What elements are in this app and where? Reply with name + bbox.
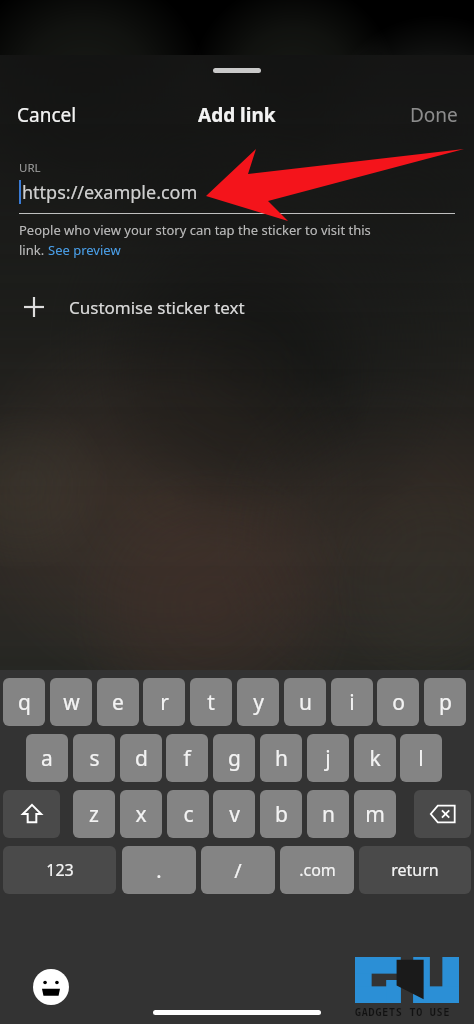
staticText: u	[299, 688, 312, 717]
button[interactable]: Shift	[3, 790, 60, 838]
staticText: p	[439, 688, 452, 717]
staticText: g	[228, 744, 241, 773]
button[interactable]: t	[190, 678, 232, 726]
button[interactable]: .com	[280, 846, 354, 894]
button[interactable]: s	[73, 734, 115, 782]
button[interactable]: k	[354, 734, 396, 782]
button[interactable]: f	[166, 734, 208, 782]
staticText: m	[365, 800, 385, 829]
button[interactable]: Done	[394, 92, 474, 138]
staticText: .	[156, 857, 162, 884]
staticText: .com	[299, 859, 336, 881]
button[interactable]: u	[284, 678, 326, 726]
button[interactable]: .	[122, 846, 196, 894]
button[interactable]: r	[143, 678, 185, 726]
button[interactable]: Cancel	[0, 92, 94, 138]
button[interactable]: return	[359, 846, 471, 894]
staticText: s	[89, 744, 100, 773]
button[interactable]: y	[237, 678, 279, 726]
button[interactable]: o	[377, 678, 419, 726]
staticText: x	[135, 800, 147, 829]
button[interactable]: g	[213, 734, 255, 782]
button[interactable]: d	[120, 734, 162, 782]
staticText: d	[135, 744, 148, 773]
button[interactable]: Emoji keyboard	[33, 969, 69, 1005]
staticText: n	[322, 800, 335, 829]
button[interactable]: w	[50, 678, 92, 726]
button[interactable]: b	[260, 790, 302, 838]
button[interactable]: z	[73, 790, 115, 838]
button[interactable]: e	[97, 678, 139, 726]
button[interactable]: x	[120, 790, 162, 838]
staticText: j	[325, 744, 331, 773]
button[interactable]: h	[260, 734, 302, 782]
staticText: b	[275, 800, 288, 829]
staticText: https://example.com	[22, 180, 198, 205]
button[interactable]: https://example.com	[0, 177, 474, 217]
staticText: Cancel	[17, 102, 77, 128]
staticText: 123	[46, 859, 74, 881]
button[interactable]: Customise sticker text	[0, 283, 474, 331]
button[interactable]: /	[201, 846, 275, 894]
staticText: e	[112, 688, 124, 717]
staticText: URL	[19, 160, 41, 176]
button[interactable]: i	[331, 678, 373, 726]
button[interactable]: m	[354, 790, 396, 838]
staticText: return	[391, 859, 439, 881]
staticText: Done	[410, 102, 458, 128]
button[interactable]: l	[400, 734, 442, 782]
staticText: /	[234, 857, 242, 884]
staticText: k	[369, 744, 381, 773]
button[interactable]: j	[307, 734, 349, 782]
staticText: q	[18, 688, 31, 717]
staticText: i	[349, 688, 355, 717]
staticText: w	[63, 688, 80, 717]
button[interactable]: a	[26, 734, 68, 782]
staticText: Customise sticker text	[69, 296, 245, 319]
staticText: Add link	[198, 102, 276, 128]
staticText: o	[392, 688, 405, 717]
staticText: v	[229, 800, 240, 829]
staticText: GADGETS TO USE	[355, 1005, 451, 1019]
button[interactable]: See preview	[48, 241, 121, 259]
staticText: f	[183, 744, 191, 773]
staticText: h	[275, 744, 288, 773]
button[interactable]: v	[213, 790, 255, 838]
staticText: z	[89, 800, 99, 829]
button[interactable]: n	[307, 790, 349, 838]
staticText: l	[418, 744, 424, 773]
button[interactable]: c	[167, 790, 209, 838]
staticText: y	[253, 688, 264, 717]
staticText: People who view your story can tap the s…	[19, 221, 371, 239]
button[interactable]: 123	[3, 846, 116, 894]
button[interactable]: p	[424, 678, 466, 726]
staticText: link.	[19, 241, 48, 259]
button[interactable]: Backspace	[414, 790, 471, 838]
button[interactable]: q	[3, 678, 45, 726]
staticText: t	[207, 688, 215, 717]
staticText: See preview	[48, 241, 121, 259]
staticText: a	[41, 744, 53, 773]
staticText: c	[183, 800, 194, 829]
staticText: r	[160, 688, 169, 717]
